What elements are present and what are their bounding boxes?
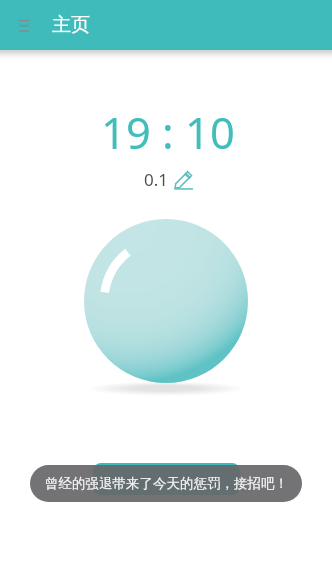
staticText: 19 : 10 [101,102,235,161]
staticText: 0.1 [144,168,169,191]
staticText: 主页 [52,13,90,37]
staticText: 曾经的强退带来了今天的惩罚，接招吧！ [45,475,288,492]
button[interactable]: 曾经的强退带来了今天的惩罚，接招吧！ [30,465,302,502]
button[interactable]: Bubble ball [84,219,248,383]
button[interactable]: Menu [0,0,48,50]
button[interactable]: Edit [173,169,194,190]
